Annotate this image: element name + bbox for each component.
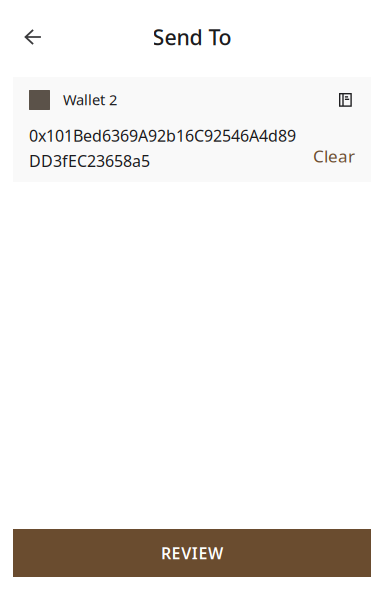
button[interactable]: Clear <box>313 144 355 171</box>
button[interactable]: REVIEW <box>13 529 371 577</box>
staticText: REVIEW <box>161 542 223 564</box>
staticText: Send To <box>152 23 231 51</box>
staticText: 0x101Bed6369A92b16C92546A4d89 DD3fEC2365… <box>29 125 296 171</box>
staticText: Wallet 2 <box>63 90 117 109</box>
button[interactable]: Address book <box>339 90 355 110</box>
button[interactable]: Back <box>12 15 54 62</box>
staticText: Clear <box>313 144 355 167</box>
